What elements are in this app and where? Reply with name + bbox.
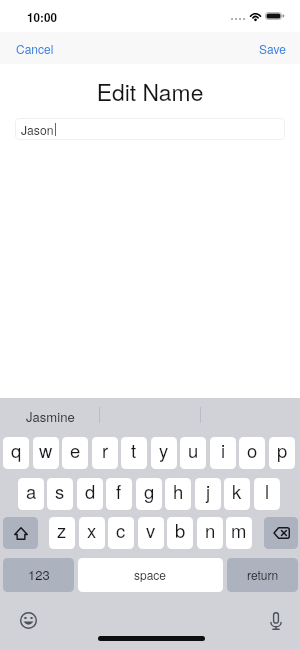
staticText: w (39, 437, 53, 463)
button[interactable]: j (195, 478, 221, 510)
staticText: space (134, 566, 167, 583)
staticText: i (221, 437, 226, 463)
button[interactable]: Shift (3, 517, 38, 549)
staticText: x (87, 517, 97, 543)
button[interactable]: Jason (15, 118, 285, 140)
staticText: t (131, 437, 137, 463)
staticText: m (231, 517, 247, 543)
button[interactable]: v (138, 517, 164, 549)
staticText: Jasmine (26, 407, 75, 426)
staticText: e (70, 437, 81, 463)
staticText: Jason (21, 121, 54, 138)
button[interactable]: k (224, 478, 250, 510)
staticText: c (116, 517, 126, 543)
button[interactable]: n (197, 517, 223, 549)
button[interactable]: w (33, 437, 59, 469)
staticText: k (232, 478, 242, 504)
staticText: p (277, 437, 288, 463)
button[interactable]: Emoji keyboard (14, 606, 42, 634)
button[interactable]: return (227, 558, 298, 592)
button[interactable]: a (18, 478, 44, 510)
button[interactable]: space (78, 558, 223, 592)
button[interactable]: s (47, 478, 73, 510)
button[interactable]: e (62, 437, 88, 469)
staticText: d (85, 478, 96, 504)
button[interactable]: p (269, 437, 295, 469)
button[interactable]: i (210, 437, 236, 469)
staticText: a (26, 478, 37, 504)
staticText: f (116, 478, 122, 504)
button[interactable]: r (92, 437, 118, 469)
staticText: 123 (28, 565, 50, 584)
staticText: q (11, 437, 22, 463)
staticText: o (247, 437, 258, 463)
staticText: b (175, 517, 186, 543)
staticText: return (247, 566, 279, 583)
button[interactable]: g (136, 478, 162, 510)
button[interactable]: Cancel (0, 32, 64, 64)
button[interactable]: q (3, 437, 29, 469)
staticText: h (173, 478, 184, 504)
staticText: r (102, 437, 109, 463)
staticText: y (159, 437, 169, 463)
staticText: v (146, 517, 156, 543)
button[interactable]: m (226, 517, 252, 549)
staticText: s (55, 478, 65, 504)
staticText: g (144, 478, 155, 504)
button[interactable]: x (79, 517, 105, 549)
staticText: u (188, 437, 199, 463)
button[interactable]: Save (249, 32, 300, 64)
button[interactable]: u (180, 437, 206, 469)
staticText: 10:00 (27, 9, 57, 26)
button[interactable]: 123 (3, 558, 74, 592)
button[interactable]: l (254, 478, 280, 510)
button[interactable]: d (77, 478, 103, 510)
button[interactable]: z (49, 517, 75, 549)
staticText: Cancel (16, 40, 54, 57)
button[interactable]: Backspace (264, 517, 298, 549)
button[interactable]: f (106, 478, 132, 510)
staticText: Save (259, 40, 286, 57)
staticText: j (206, 478, 211, 504)
staticText: Edit Name (0, 75, 300, 108)
staticText: n (205, 517, 216, 543)
button[interactable]: o (239, 437, 265, 469)
button[interactable]: Dictation (262, 607, 290, 635)
button[interactable]: t (121, 437, 147, 469)
button[interactable]: b (167, 517, 193, 549)
staticText: z (57, 517, 67, 543)
button[interactable]: h (165, 478, 191, 510)
button[interactable]: y (151, 437, 177, 469)
button[interactable]: c (108, 517, 134, 549)
staticText: l (265, 478, 270, 504)
